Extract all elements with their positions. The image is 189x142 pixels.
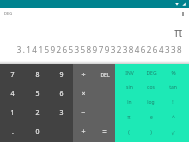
staticText: 0: [35, 127, 40, 137]
staticText: e: [150, 114, 153, 121]
button[interactable]: tan: [162, 80, 184, 95]
button[interactable]: log: [140, 95, 162, 110]
staticText: 8: [35, 70, 40, 80]
staticText: √: [171, 130, 175, 136]
staticText: INV: [125, 70, 134, 77]
button[interactable]: 4: [0, 84, 25, 103]
staticText: 6: [59, 89, 64, 99]
staticText: 3.14159265358979323846264338: [0, 44, 183, 55]
staticText: DEG: [146, 70, 157, 77]
staticText: ^: [172, 114, 175, 121]
button[interactable]: DEG: [140, 66, 162, 80]
button[interactable]: π: [118, 110, 140, 125]
staticText: log: [147, 99, 155, 106]
staticText: 7: [10, 70, 15, 80]
button[interactable]: 7: [0, 66, 25, 84]
staticText: 1: [10, 108, 15, 118]
button[interactable]: cos: [140, 80, 162, 95]
staticText: .: [12, 127, 14, 137]
button[interactable]: 3: [49, 103, 73, 122]
staticText: %: [171, 70, 176, 77]
button[interactable]: 8: [25, 66, 49, 84]
staticText: ÷: [81, 70, 86, 80]
button[interactable]: Divide: [73, 66, 94, 84]
staticText: ln: [127, 99, 132, 106]
staticText: ×: [81, 89, 86, 99]
button[interactable]: Equals: [94, 122, 115, 141]
button[interactable]: Add: [73, 122, 94, 141]
button[interactable]: 2: [25, 103, 49, 122]
staticText: !: [172, 99, 174, 106]
staticText: sin: [126, 84, 133, 91]
staticText: 4: [10, 89, 15, 99]
button[interactable]: e: [140, 110, 162, 125]
button[interactable]: 1: [0, 103, 25, 122]
button[interactable]: .: [0, 122, 25, 141]
button[interactable]: Subtract: [73, 103, 94, 122]
button[interactable]: √: [162, 125, 184, 140]
button[interactable]: ): [140, 125, 162, 140]
button[interactable]: !: [162, 95, 184, 110]
staticText: 5: [35, 89, 40, 99]
staticText: =: [102, 126, 107, 137]
staticText: +: [81, 127, 86, 137]
button[interactable]: DEL: [94, 66, 115, 84]
button[interactable]: 0: [25, 122, 49, 141]
staticText: tan: [169, 84, 177, 91]
button[interactable]: ^: [162, 110, 184, 125]
staticText: 9: [59, 70, 64, 80]
button[interactable]: 6: [49, 84, 73, 103]
button[interactable]: sin: [118, 80, 140, 95]
staticText: DEG: [4, 11, 13, 16]
staticText: (: [128, 129, 130, 136]
button[interactable]: INV: [118, 66, 140, 80]
button[interactable]: Multiply: [73, 84, 94, 103]
staticText: DEL: [100, 72, 110, 79]
button[interactable]: (: [118, 125, 140, 140]
button[interactable]: ln: [118, 95, 140, 110]
staticText: 2: [35, 108, 40, 118]
staticText: π: [0, 24, 182, 40]
staticText: cos: [147, 84, 155, 91]
button[interactable]: 5: [25, 84, 49, 103]
button[interactable]: %: [162, 66, 184, 80]
button[interactable]: 9: [49, 66, 73, 84]
staticText: −: [81, 108, 86, 118]
staticText: 3: [59, 108, 64, 118]
staticText: π: [127, 114, 131, 121]
staticText: ): [150, 129, 152, 136]
